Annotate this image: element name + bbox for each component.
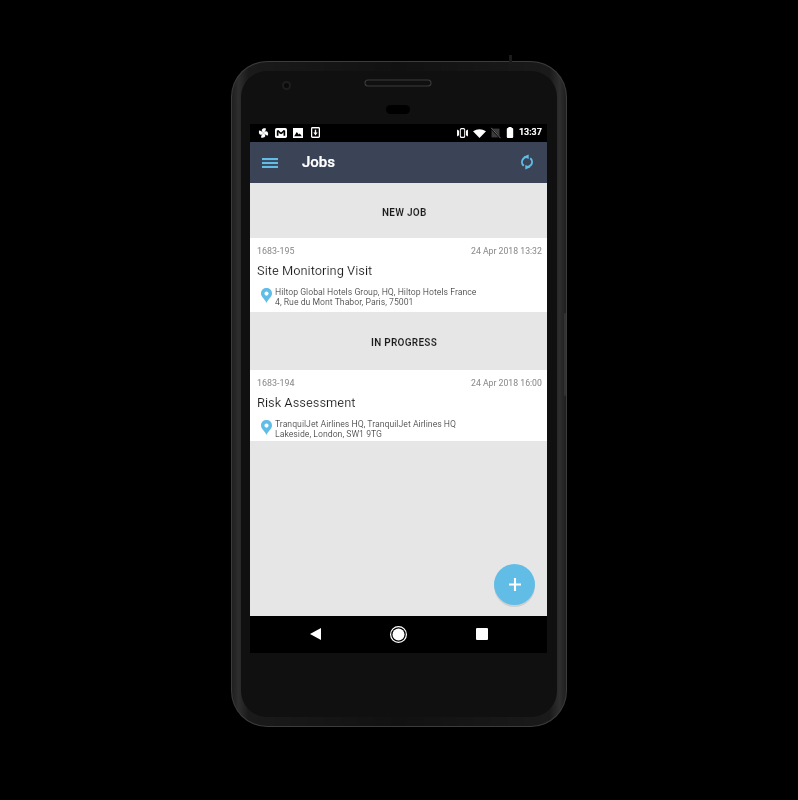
staticText: Risk Assessment (257, 395, 356, 410)
button[interactable]: Refresh (511, 146, 543, 178)
staticText: 1683-194 (257, 378, 295, 388)
staticText: Jobs (302, 153, 336, 171)
button[interactable]: Back (297, 616, 333, 652)
button[interactable]: Home (380, 616, 416, 652)
staticText: Lakeside, London, SW1 9TG (275, 429, 383, 439)
button[interactable]: Add job (494, 564, 535, 605)
staticText: 4, Rue du Mont Thabor, Paris, 75001 (275, 297, 414, 307)
staticText: Hiltop Global Hotels Group, HQ, Hiltop H… (275, 287, 477, 297)
staticText: NEW JOB (382, 207, 427, 219)
staticText: 13:37 (519, 127, 542, 138)
button[interactable]: Open navigation menu (253, 146, 287, 180)
staticText: TranquilJet Airlines HQ, TranquilJet Air… (275, 419, 457, 429)
button[interactable]: 1683-195 (250, 238, 547, 312)
staticText: 24 Apr 2018 13:32 (471, 246, 542, 256)
staticText: Site Monitoring Visit (257, 263, 373, 278)
staticText: IN PROGRESS (371, 337, 438, 349)
button[interactable]: 1683-194 (250, 370, 547, 441)
staticText: 24 Apr 2018 16:00 (471, 378, 542, 388)
button[interactable]: Recent apps (464, 616, 500, 652)
staticText: 1683-195 (257, 246, 295, 256)
